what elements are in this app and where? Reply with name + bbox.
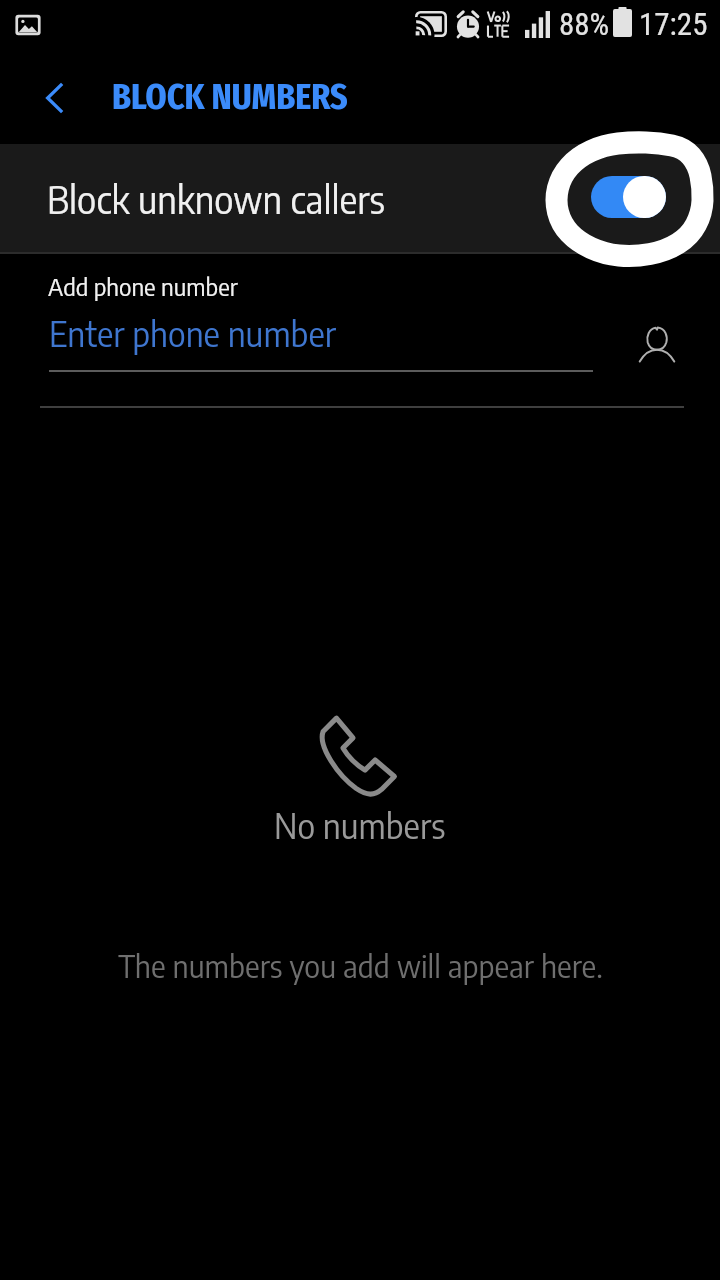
- staticText: The numbers you add will appear here.: [118, 947, 603, 985]
- staticText: Block unknown callers: [47, 176, 385, 222]
- button[interactable]: Block unknown callers: [0, 144, 720, 252]
- staticText: Enter phone number: [49, 312, 337, 355]
- button[interactable]: Back: [20, 62, 92, 134]
- staticText: 17:25: [639, 6, 708, 42]
- staticText: 88%: [559, 6, 610, 42]
- button[interactable]: Block unknown callers toggle: [591, 176, 666, 218]
- staticText: Add phone number: [48, 271, 238, 301]
- staticText: BLOCK NUMBERS: [112, 74, 348, 118]
- staticText: No numbers: [274, 804, 446, 847]
- button[interactable]: Choose contact: [593, 312, 681, 384]
